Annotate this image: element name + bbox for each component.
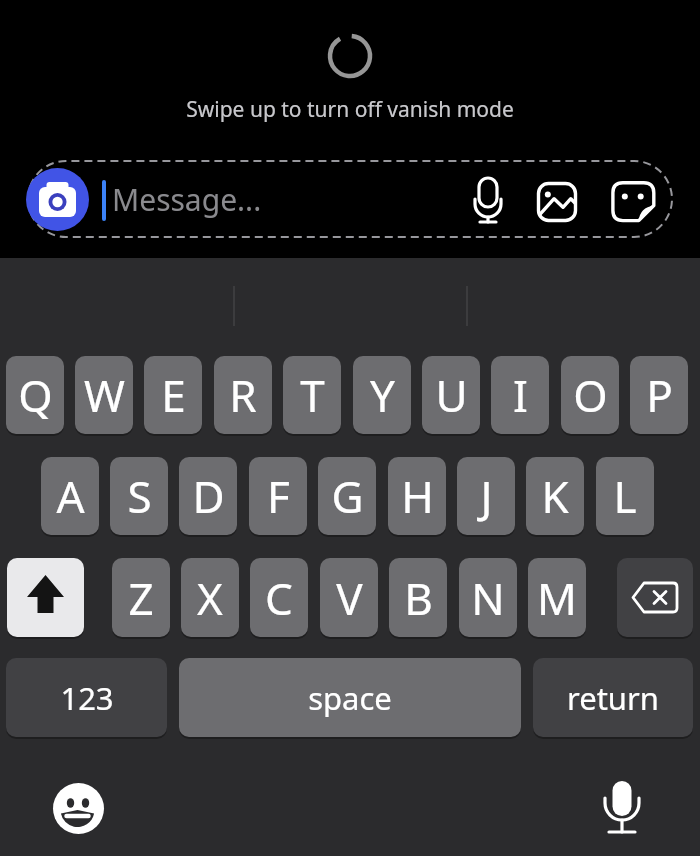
button[interactable]: C (250, 558, 308, 637)
button[interactable] (26, 168, 89, 231)
staticText: return (567, 677, 659, 719)
staticText: Message... (112, 179, 262, 220)
staticText: O (573, 365, 608, 425)
button[interactable]: Y (353, 356, 411, 434)
button[interactable]: P (630, 356, 688, 434)
staticText: 123 (60, 677, 114, 719)
staticText: A (56, 466, 85, 526)
staticText: J (480, 466, 493, 526)
staticText: C (265, 568, 293, 628)
staticText: R (229, 365, 257, 425)
button[interactable]: V (320, 558, 378, 637)
staticText: M (537, 568, 577, 628)
button[interactable] (466, 172, 510, 228)
staticText: D (192, 466, 225, 526)
button[interactable]: S (110, 457, 168, 535)
staticText: Z (128, 568, 154, 628)
button[interactable] (617, 558, 693, 637)
button[interactable]: W (75, 356, 133, 434)
staticText: S (127, 466, 152, 526)
button[interactable]: T (283, 356, 341, 434)
button[interactable]: R (214, 356, 272, 434)
staticText: Q (18, 365, 53, 425)
staticText: space (308, 677, 392, 719)
staticText: P (646, 365, 673, 425)
button[interactable]: X (181, 558, 239, 637)
button[interactable]: D (179, 457, 237, 535)
button[interactable] (534, 178, 580, 224)
staticText: V (336, 568, 363, 628)
button[interactable]: space (179, 658, 521, 737)
button[interactable]: F (249, 457, 307, 535)
button[interactable]: A (41, 457, 99, 535)
button[interactable]: I (491, 356, 549, 434)
staticText: Swipe up to turn off vanish mode (186, 95, 514, 124)
button[interactable]: O (561, 356, 619, 434)
staticText: E (161, 365, 186, 425)
staticText: B (404, 568, 433, 628)
button[interactable]: E (144, 356, 202, 434)
button[interactable]: U (422, 356, 480, 434)
staticText: W (84, 365, 125, 425)
staticText: G (331, 466, 364, 526)
button[interactable]: 123 (6, 658, 167, 737)
button[interactable]: L (596, 457, 654, 535)
button[interactable] (608, 178, 658, 224)
button[interactable]: H (388, 457, 446, 535)
button[interactable]: Z (112, 558, 170, 637)
button[interactable]: K (526, 457, 584, 535)
staticText: F (267, 466, 290, 526)
staticText: H (401, 466, 434, 526)
staticText: N (471, 568, 505, 628)
button[interactable] (28, 161, 672, 237)
button[interactable] (600, 778, 644, 838)
staticText: Y (370, 365, 395, 425)
button[interactable]: Q (6, 356, 64, 434)
staticText: K (541, 466, 569, 526)
staticText: I (513, 365, 528, 425)
button[interactable] (53, 783, 104, 834)
staticText: X (197, 568, 223, 628)
staticText: T (300, 365, 325, 425)
button[interactable]: B (389, 558, 447, 637)
button[interactable]: return (533, 658, 693, 737)
button[interactable] (7, 558, 84, 637)
button[interactable]: M (528, 558, 586, 637)
staticText: L (613, 466, 637, 526)
button[interactable]: J (457, 457, 515, 535)
staticText: U (435, 365, 468, 425)
button[interactable]: G (318, 457, 376, 535)
button[interactable]: N (459, 558, 517, 637)
